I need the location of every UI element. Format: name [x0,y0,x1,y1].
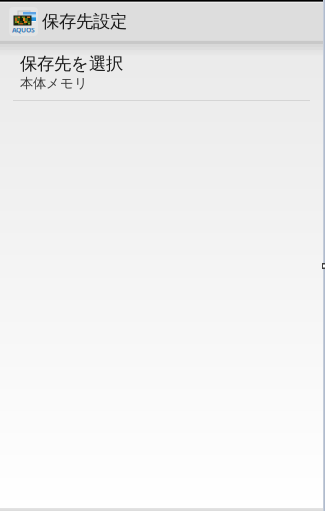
staticText: 本体メモリ [20,75,88,91]
button[interactable]: 保存先を選択 [0,49,325,101]
staticText: 保存先設定 [42,11,127,32]
staticText: AQUOS [12,26,35,34]
staticText: 保存先を選択 [20,53,123,74]
button[interactable]: 保存先設定 [0,3,325,40]
